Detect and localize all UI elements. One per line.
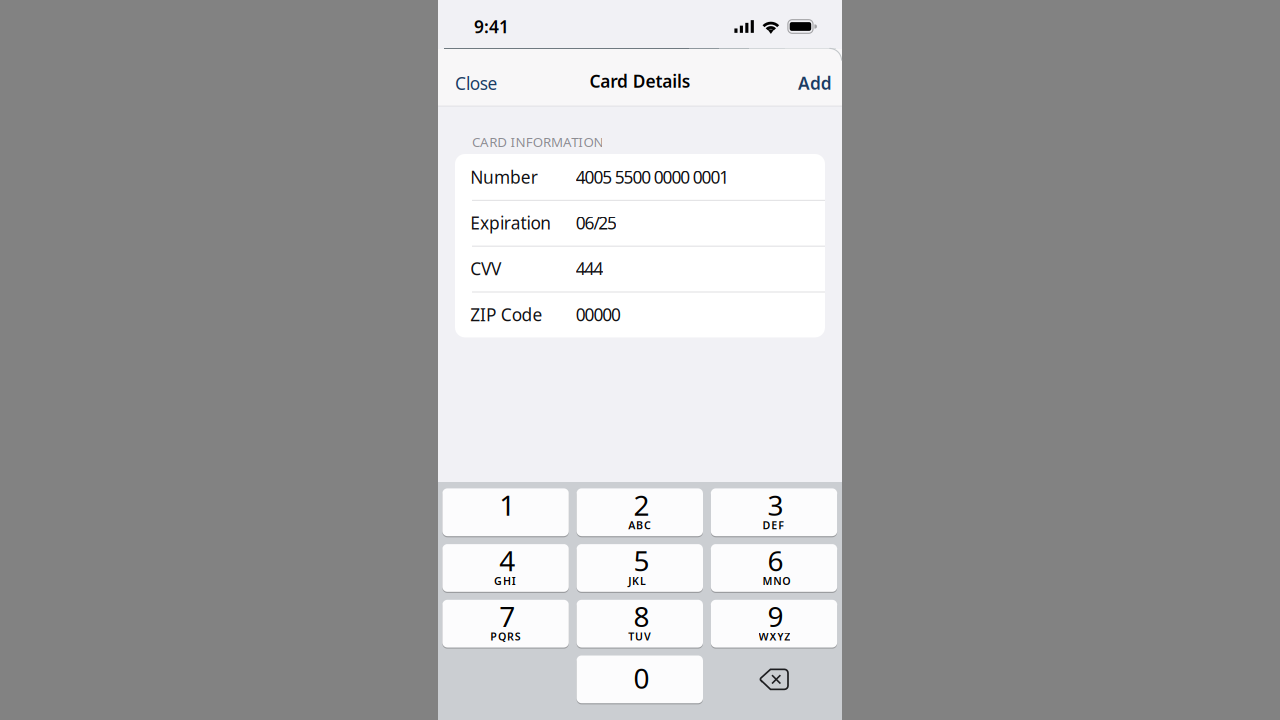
button[interactable]: 5 [577, 544, 703, 593]
staticText: 9:41 [474, 15, 509, 38]
staticText: DEF [762, 518, 784, 532]
staticText: Card Details [589, 70, 691, 93]
button[interactable]: Delete [711, 655, 837, 703]
staticText: Expiration [470, 211, 551, 234]
staticText: 6 [768, 542, 784, 579]
staticText: ZIP Code [470, 303, 542, 326]
button[interactable]: Add [782, 60, 845, 107]
button[interactable]: 2 [577, 488, 703, 537]
staticText: JKL [628, 574, 646, 588]
button[interactable]: 4 [442, 544, 569, 593]
staticText: TUV [628, 629, 651, 644]
button[interactable]: ZIP Code [455, 292, 825, 337]
staticText: 9 [768, 598, 784, 635]
button[interactable]: Number [455, 154, 825, 200]
staticText: 06/25 [576, 211, 617, 234]
button[interactable]: 9 [711, 600, 837, 649]
staticText: 8 [633, 598, 649, 635]
staticText: 4005 5500 0000 0001 [576, 165, 729, 188]
staticText: 1 [499, 486, 515, 523]
button[interactable]: Expiration [455, 200, 825, 246]
button[interactable]: 7 [442, 600, 569, 649]
staticText: 7 [499, 598, 515, 635]
staticText: Close [455, 72, 498, 95]
button[interactable]: 6 [711, 544, 837, 593]
button[interactable]: 8 [577, 600, 703, 649]
button[interactable]: 3 [711, 488, 837, 537]
button[interactable]: CVV [455, 246, 825, 292]
staticText: 00000 [576, 303, 621, 326]
staticText: Add [798, 71, 832, 94]
button[interactable]: Close [438, 61, 514, 108]
staticText: 0 [633, 659, 649, 696]
button[interactable]: 1 [442, 488, 569, 537]
staticText: 4 [499, 542, 515, 579]
staticText: 444 [576, 257, 603, 280]
staticText: Number [470, 165, 538, 188]
button[interactable]: 0 [577, 655, 703, 704]
staticText: ABC [628, 518, 651, 532]
staticText: WXYZ [759, 629, 790, 644]
staticText: MNO [762, 574, 790, 588]
staticText: CARD INFORMATION [472, 133, 603, 151]
staticText: 3 [768, 486, 784, 523]
staticText: PQRS [490, 629, 521, 644]
staticText: GHI [494, 574, 516, 588]
staticText: 5 [633, 542, 649, 579]
staticText: CVV [470, 257, 501, 280]
staticText: 2 [633, 486, 649, 523]
